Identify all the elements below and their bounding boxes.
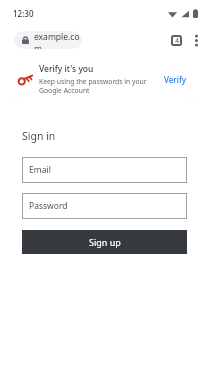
staticText: Email	[29, 164, 51, 176]
staticText: Sign in	[22, 129, 56, 143]
staticText: Keep using the passwords in your Google …	[39, 77, 157, 95]
button[interactable]: Open tabs: 4	[165, 29, 187, 51]
staticText: Verify	[164, 74, 186, 85]
button[interactable]: Password	[22, 193, 187, 219]
button[interactable]: More options	[187, 29, 205, 51]
button[interactable]: Email	[22, 157, 187, 183]
button[interactable]: Sign up	[22, 230, 187, 254]
staticText: Sign up	[89, 236, 121, 248]
staticText: 12:30	[13, 8, 34, 19]
staticText: 4	[175, 36, 179, 45]
staticText: Verify it's you	[39, 63, 94, 75]
button[interactable]: example.com	[14, 31, 82, 49]
button[interactable]: Verify	[161, 71, 189, 88]
staticText: Password	[29, 200, 68, 212]
staticText: example.com	[34, 31, 82, 49]
